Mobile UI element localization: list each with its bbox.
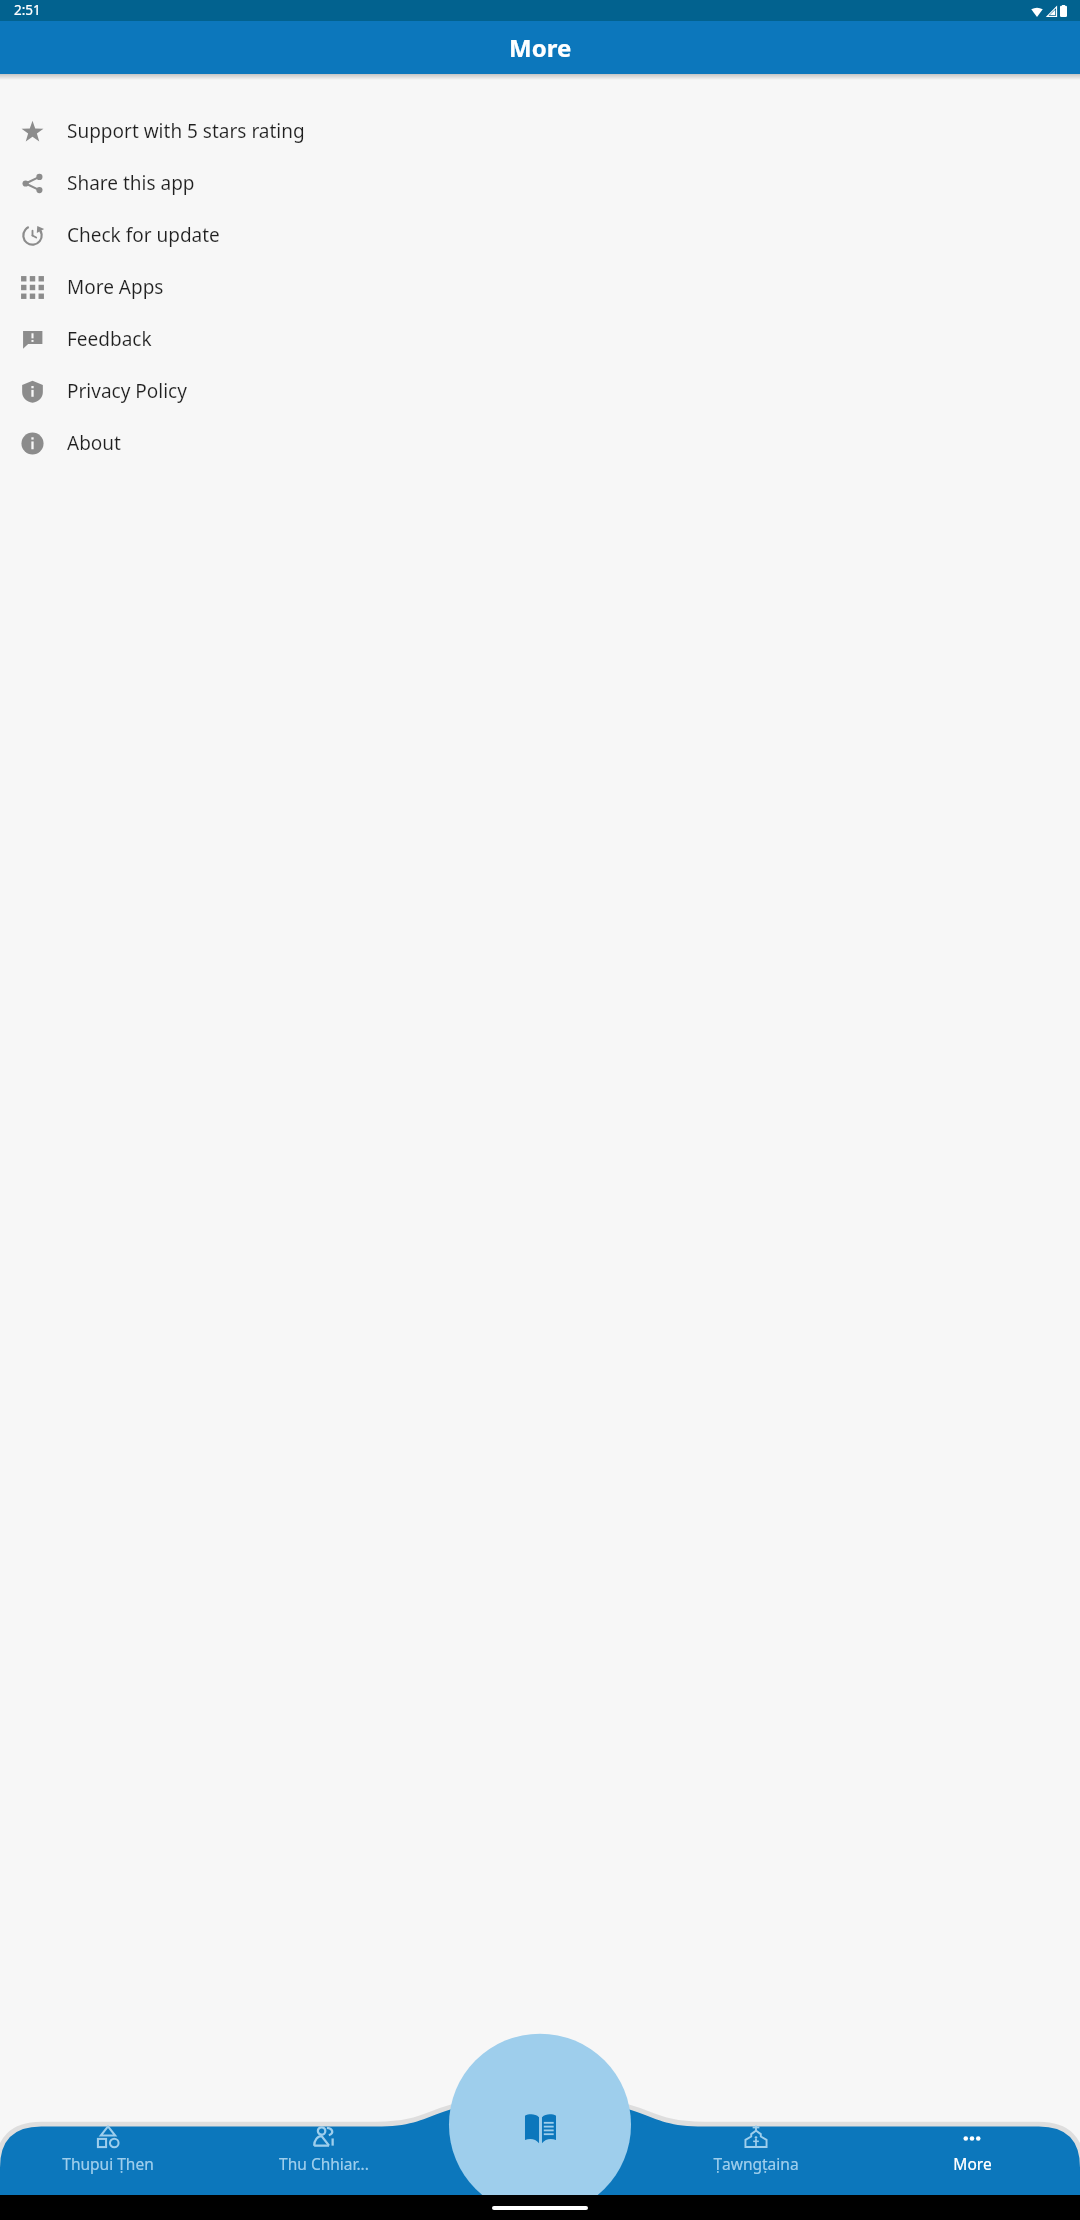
button[interactable]: More xyxy=(864,2098,1080,2195)
staticText: More xyxy=(953,2153,992,2174)
button[interactable]: Thu Chhiar... xyxy=(216,2098,432,2195)
staticText: About xyxy=(67,430,121,456)
button[interactable]: Thupui Ṭhen xyxy=(0,2098,216,2195)
staticText: More Apps xyxy=(67,274,164,300)
staticText: Check for update xyxy=(67,222,220,248)
button[interactable]: Feedback xyxy=(0,313,1080,365)
staticText: Thupui Ṭhen xyxy=(62,2153,154,2174)
staticText: Thu Chhiar... xyxy=(279,2153,369,2174)
staticText: Feedback xyxy=(67,326,152,352)
button[interactable]: Read xyxy=(432,2098,648,2195)
button[interactable]: Privacy Policy xyxy=(0,365,1080,417)
staticText: More xyxy=(509,31,572,64)
button[interactable]: Share this app xyxy=(0,157,1080,209)
staticText: Support with 5 stars rating xyxy=(67,118,305,144)
button[interactable]: Ṭawngṭaina xyxy=(648,2098,864,2195)
staticText: Privacy Policy xyxy=(67,378,187,404)
button[interactable]: Support with 5 stars rating xyxy=(0,105,1080,157)
staticText: Ṭawngṭaina xyxy=(713,2153,799,2174)
button[interactable]: Check for update xyxy=(0,209,1080,261)
staticText: 2:51 xyxy=(14,1,41,19)
button[interactable]: About xyxy=(0,417,1080,469)
button[interactable]: More Apps xyxy=(0,261,1080,313)
staticText: Share this app xyxy=(67,170,195,196)
